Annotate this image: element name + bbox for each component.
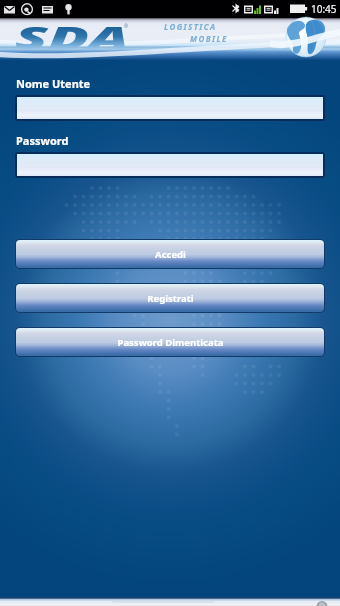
button[interactable]: Password Dimenticata — [16, 328, 324, 356]
staticText: 10:45 — [311, 2, 337, 16]
button[interactable] — [17, 97, 323, 119]
staticText: LOGISTICA — [164, 21, 217, 32]
staticText: Nome Utente — [16, 76, 91, 91]
staticText: Registrati — [147, 292, 194, 305]
staticText: Accedi — [155, 248, 186, 261]
button[interactable]: Registrati — [16, 284, 324, 312]
staticText: Password Dimenticata — [117, 336, 224, 349]
staticText: Password — [16, 133, 69, 148]
staticText: ® — [124, 23, 129, 30]
staticText: MOBILE — [190, 33, 228, 44]
button[interactable]: Accedi — [16, 240, 324, 268]
staticText: SDA — [15, 16, 132, 57]
button[interactable] — [17, 154, 323, 176]
